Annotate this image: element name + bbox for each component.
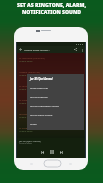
button[interactable]: Maryam (Surah 19)	[17, 109, 85, 123]
button[interactable]: Al-Kahf (Surah 18)	[17, 95, 85, 109]
staticText: Juz 30 (Qari Amma)	[30, 77, 53, 80]
staticText: Usama Zahid	[19, 60, 33, 63]
button[interactable]: Next	[58, 149, 64, 155]
staticText: Juz 30 (Qari Amma)	[19, 139, 41, 142]
button[interactable]: Set as ringtone	[27, 92, 84, 101]
button[interactable]: Pause	[48, 148, 55, 155]
staticText: Al-Waqiah (Surah 56)	[19, 126, 44, 129]
button[interactable]: Ar-Rahman (Surah 55)	[17, 53, 85, 67]
staticText: Yaseen (Surah 36)	[19, 70, 40, 73]
staticText: NOTIFICATION SOUND	[22, 9, 81, 16]
staticText: Ar-Rahman (Surah 55)	[19, 56, 45, 59]
staticText: Share	[30, 122, 37, 125]
staticText: Usama Zahid	[19, 102, 33, 105]
button[interactable]: Al-Mulk (Surah 67)	[17, 81, 85, 95]
staticText: Set as ringtone	[30, 95, 48, 98]
staticText: Al-Kahf (Surah 18)	[19, 98, 40, 101]
button[interactable]: More options	[79, 47, 85, 53]
button[interactable]: Yaseen (Surah 36)	[17, 67, 85, 81]
staticText: Usama Zahid	[19, 130, 33, 133]
button[interactable]: Share	[72, 46, 79, 53]
staticText: Set as notification sound	[30, 104, 59, 107]
button[interactable]: Share	[27, 119, 84, 128]
staticText: Usama Zahid	[19, 88, 33, 91]
staticText: Usama Zahid	[19, 74, 33, 77]
staticText: Show track info	[30, 86, 49, 89]
button[interactable]: Set as alarm sound	[27, 110, 84, 119]
button[interactable]: Back	[17, 46, 24, 53]
staticText: Maryam (Surah 19)	[19, 112, 42, 115]
staticText: Usama Zahid Murott...	[24, 48, 51, 51]
staticText: Set as alarm sound	[30, 113, 53, 116]
button[interactable]: Previous	[39, 149, 45, 155]
button[interactable]: Al-Waqiah (Surah 56)	[17, 123, 85, 137]
staticText: SET AS RINGTONE, ALARM,	[17, 2, 86, 9]
button[interactable]: Juz 30 (Qari Amma)	[27, 74, 84, 83]
staticText: Al-Mulk (Surah 67)	[19, 84, 41, 87]
button[interactable]: Set as notification sound	[27, 101, 84, 110]
staticText: Usama Zahid	[19, 116, 33, 119]
button[interactable]: Show track info	[27, 83, 84, 92]
staticText: Usama Zahid	[19, 142, 32, 145]
